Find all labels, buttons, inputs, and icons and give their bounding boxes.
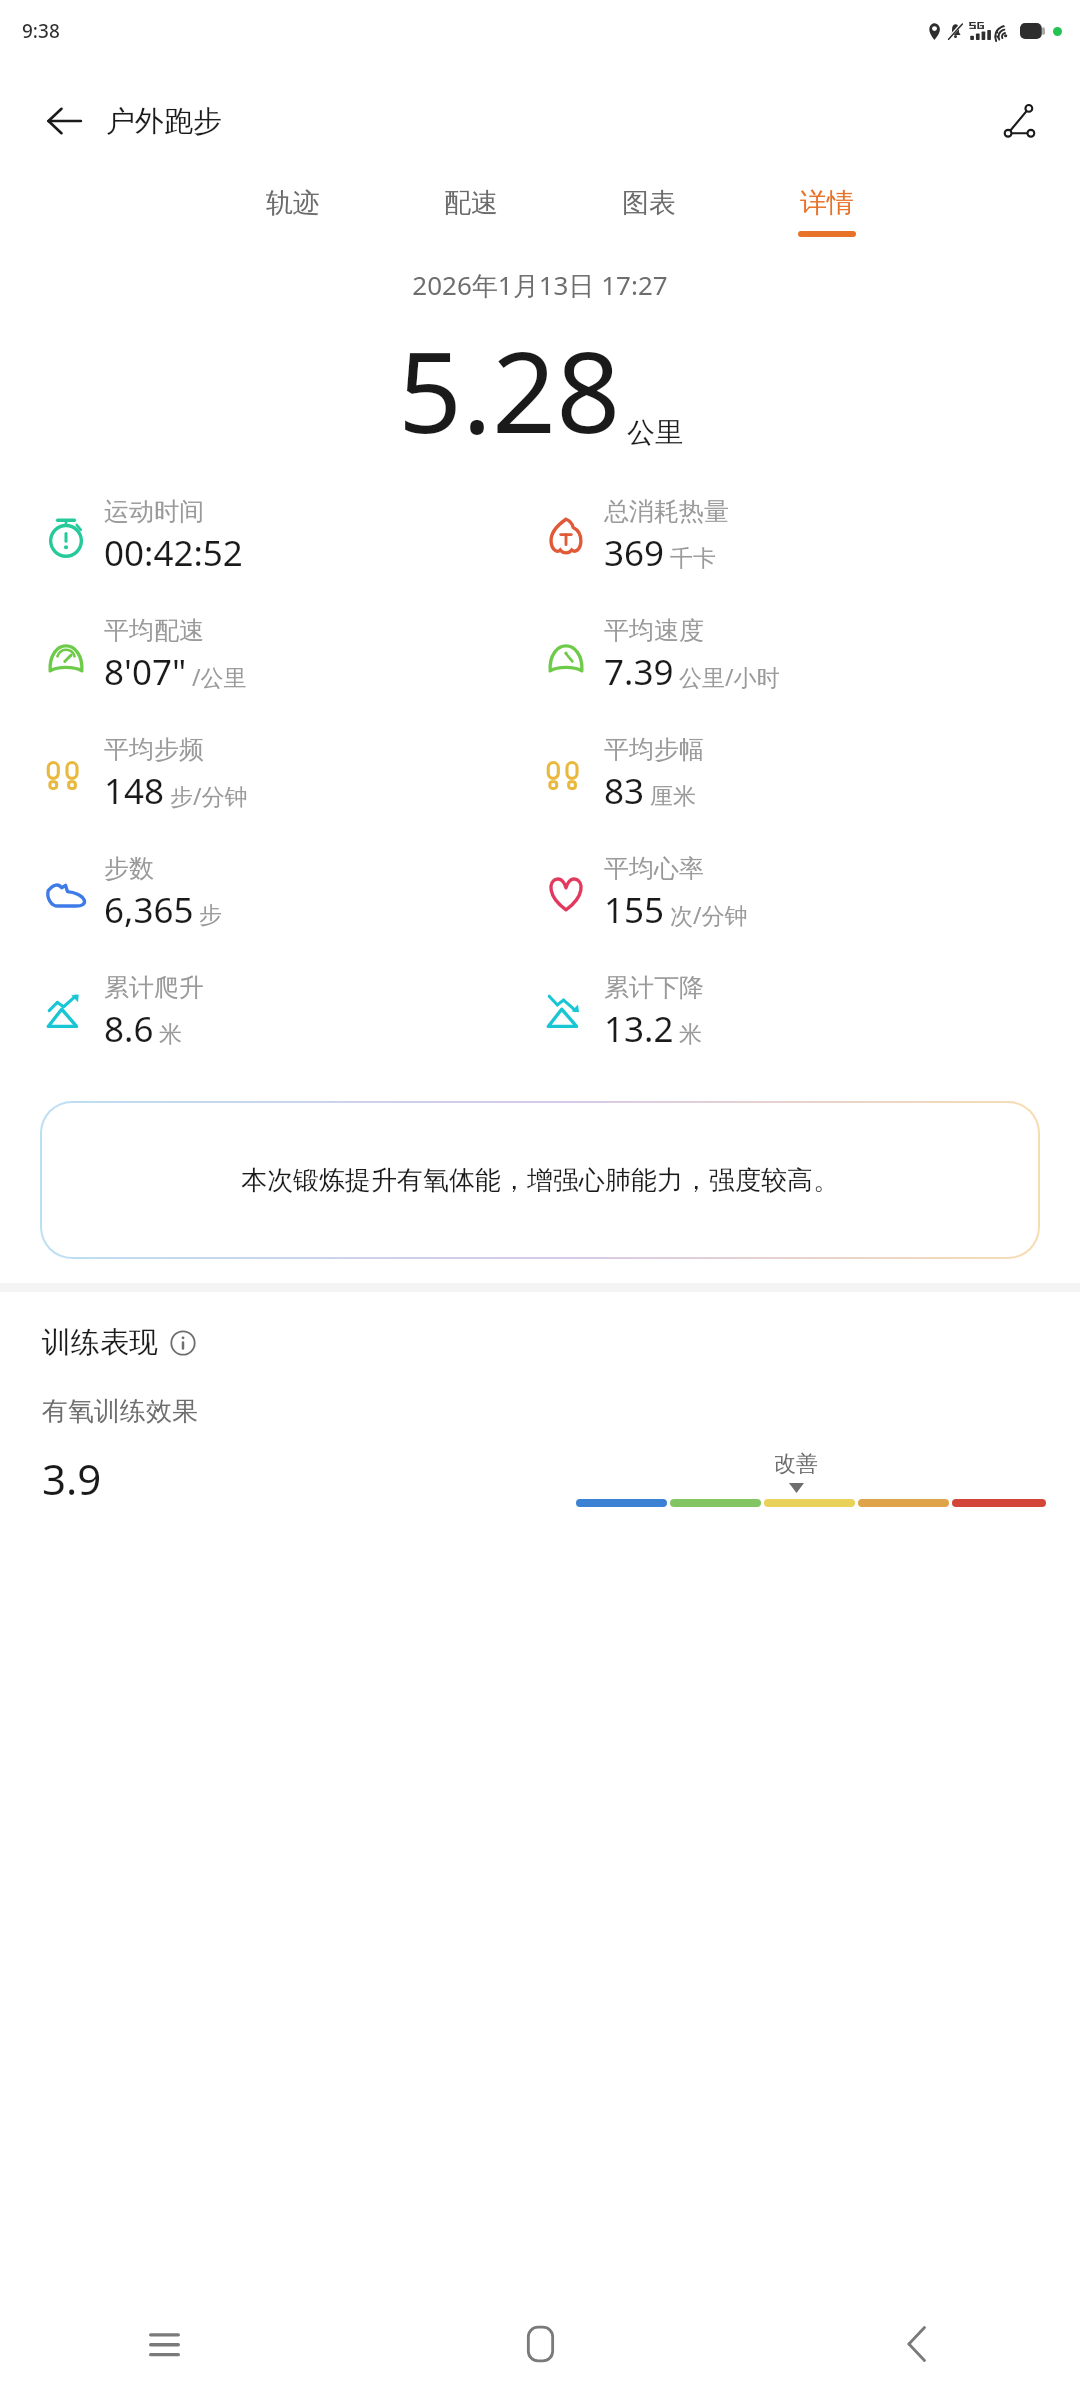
staticText: 8.6 [104,1005,154,1053]
staticText: 7.39 [604,648,674,696]
staticText: 3.9 [42,1450,102,1507]
staticText: 运动时间 [104,496,204,527]
staticText: 步 [199,901,222,930]
staticText: 详情 [800,186,854,220]
button[interactable]: 平均心率 [542,853,1080,934]
staticText: 步数 [104,853,154,884]
staticText: 改善 [774,1450,818,1478]
staticText: 公里/小时 [679,661,780,692]
staticText: 83 [604,767,645,815]
staticText: 次/分钟 [670,899,748,930]
button[interactable]: 运动时间 [42,496,540,577]
staticText: 00:42:52 [104,529,243,577]
button[interactable]: 配速 [440,180,502,243]
staticText: /公里 [192,661,247,692]
staticText: 步/分钟 [170,780,248,811]
staticText: 轨迹 [266,186,320,220]
other: Info [170,1330,196,1356]
button[interactable]: Back [880,2308,952,2380]
staticText: 千卡 [670,544,716,573]
staticText: 配速 [444,186,498,220]
staticText: 有氧训练效果 [42,1395,198,1428]
button[interactable]: 累计下降 [542,972,1080,1053]
staticText: 米 [159,1020,182,1049]
staticText: 累计下降 [604,972,704,1003]
button[interactable]: 轨迹 [262,180,324,243]
button[interactable]: 图表 [618,180,680,243]
staticText: 369 [604,529,665,577]
staticText: 平均步幅 [604,734,704,765]
staticText: 累计爬升 [104,972,204,1003]
staticText: 米 [679,1020,702,1049]
staticText: 155 [604,886,665,934]
staticText: 平均配速 [104,615,204,646]
button[interactable]: 平均步频 [42,734,540,815]
staticText: 8'07" [104,648,187,696]
button[interactable]: 本次锻炼提升有氧体能，增强心肺能力，强度较高。 [42,1103,1038,1257]
button[interactable]: 平均速度 [542,615,1080,696]
staticText: 9:38 [22,18,60,44]
button[interactable]: 步数 [42,853,540,934]
button[interactable]: 平均步幅 [542,734,1080,815]
staticText: 148 [104,767,165,815]
staticText: 平均步频 [104,734,204,765]
button[interactable]: 平均配速 [42,615,540,696]
button[interactable]: Back [40,97,88,145]
button[interactable]: Recent apps [128,2308,200,2380]
button[interactable]: Home [504,2308,576,2380]
button[interactable]: 累计爬升 [42,972,540,1053]
staticText: 图表 [622,186,676,220]
staticText: 户外跑步 [106,103,222,140]
staticText: 6,365 [104,886,194,934]
button[interactable]: 训练表现 [42,1324,196,1361]
staticText: 13.2 [604,1005,674,1053]
staticText: 厘米 [650,782,696,811]
staticText: 5.28 [398,313,621,466]
button[interactable]: 总消耗热量 [542,496,1080,577]
staticText: 总消耗热量 [604,496,729,527]
staticText: 本次锻炼提升有氧体能，增强心肺能力，强度较高。 [241,1164,839,1197]
staticText: 公里 [627,415,683,450]
button[interactable]: 详情 [796,180,858,243]
staticText: 2026年1月13日 17:27 [412,267,668,303]
staticText: 平均速度 [604,615,704,646]
staticText: 训练表现 [42,1324,158,1361]
staticText: 平均心率 [604,853,704,884]
button[interactable]: Share [994,95,1046,147]
